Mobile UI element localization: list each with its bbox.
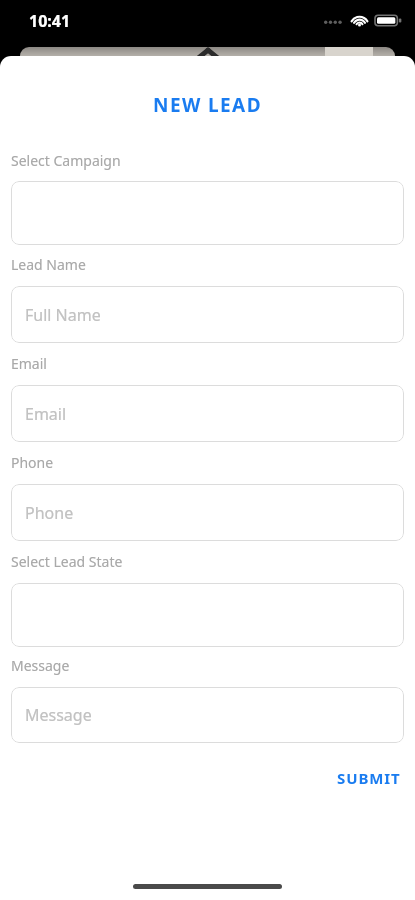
- staticText: Email: [25, 403, 67, 425]
- staticText: Select Campaign: [11, 151, 121, 170]
- button[interactable]: SUBMIT: [332, 763, 406, 793]
- staticText: Message: [11, 656, 70, 675]
- staticText: Phone: [25, 502, 74, 524]
- button[interactable]: Phone: [11, 484, 404, 541]
- staticText: Select Lead State: [11, 552, 123, 571]
- button[interactable]: NEW LEAD: [0, 92, 415, 118]
- staticText: Message: [25, 704, 92, 726]
- button[interactable]: Message: [11, 687, 404, 743]
- staticText: Full Name: [25, 304, 101, 326]
- staticText: SUBMIT: [337, 768, 401, 788]
- staticText: NEW LEAD: [153, 92, 262, 118]
- button[interactable]: Email: [11, 385, 404, 442]
- staticText: Email: [11, 354, 47, 373]
- staticText: Phone: [11, 453, 54, 472]
- button[interactable]: Full Name: [11, 286, 404, 343]
- staticText: Lead Name: [11, 255, 86, 274]
- staticText: 10:41: [29, 10, 71, 32]
- button[interactable]: Select option: [11, 181, 404, 245]
- button[interactable]: Select option: [11, 583, 404, 647]
